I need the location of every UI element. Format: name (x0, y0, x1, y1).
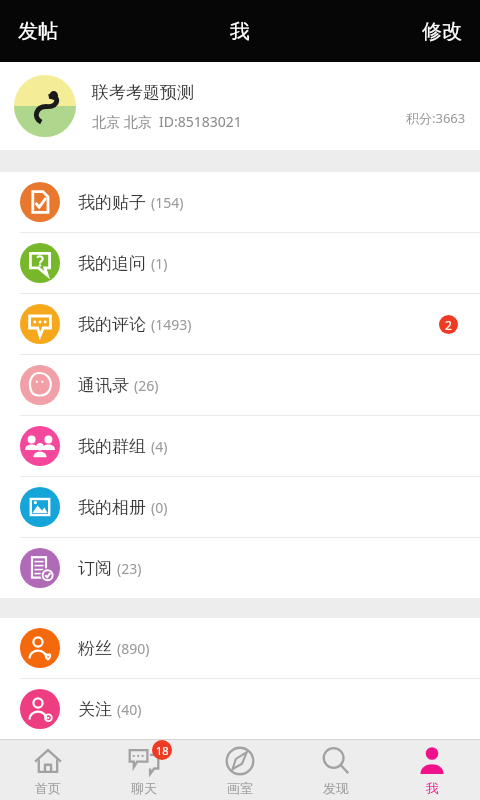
button[interactable]: 粉丝 (0, 618, 480, 678)
staticText: 粉丝 (78, 638, 112, 659)
button[interactable]: 通讯录 (0, 355, 480, 415)
staticText: 我的追问 (78, 253, 146, 274)
staticText: (0) (151, 498, 168, 517)
staticText: 聊天 (131, 780, 157, 796)
button[interactable]: 修改 (404, 0, 480, 62)
staticText: 积分:3663 (406, 109, 466, 127)
staticText: 我的群组 (78, 436, 146, 457)
staticText: 我的评论 (78, 314, 146, 335)
staticText: (4) (151, 437, 168, 456)
staticText: 2 (445, 317, 452, 333)
button[interactable]: 首页 (0, 740, 96, 800)
staticText: 我的相册 (78, 497, 146, 518)
other: 聊天 (127, 744, 161, 778)
staticText: (890) (117, 639, 150, 658)
staticText: 我 (230, 19, 250, 44)
button[interactable]: 我的追问 (0, 233, 480, 293)
staticText: 北京 北京 ID:85183021 (92, 112, 242, 131)
button[interactable]: 关注 (0, 679, 480, 739)
button[interactable]: 我 (384, 740, 480, 800)
other: 画室 (223, 744, 257, 778)
staticText: 联考考题预测 (92, 82, 194, 103)
staticText: 画室 (227, 780, 253, 796)
staticText: (23) (117, 559, 142, 578)
staticText: (26) (134, 376, 159, 395)
staticText: 修改 (422, 19, 462, 44)
staticText: (40) (117, 700, 142, 719)
button[interactable]: 我的评论 (0, 294, 480, 354)
staticText: 通讯录 (78, 375, 129, 396)
staticText: (1493) (151, 315, 192, 334)
staticText: 订阅 (78, 558, 112, 579)
button[interactable]: 发现 (288, 740, 384, 800)
button[interactable]: 聊天 (96, 740, 192, 800)
button[interactable]: 我的贴子 (0, 172, 480, 232)
button[interactable]: 画室 (192, 740, 288, 800)
staticText: 关注 (78, 699, 112, 720)
staticText: 我 (426, 780, 439, 796)
other: 我 (415, 744, 449, 778)
button[interactable]: 我的相册 (0, 477, 480, 537)
staticText: (1) (151, 254, 168, 273)
staticText: 发帖 (18, 19, 58, 44)
button[interactable]: 我的群组 (0, 416, 480, 476)
staticText: 发现 (323, 780, 349, 796)
staticText: (154) (151, 193, 184, 212)
staticText: 首页 (35, 780, 61, 796)
staticText: 我的贴子 (78, 192, 146, 213)
button[interactable]: 发帖 (0, 0, 76, 62)
button[interactable]: 订阅 (0, 538, 480, 598)
other: 首页 (31, 744, 65, 778)
other: 发现 (319, 744, 353, 778)
button[interactable]: 联考考题预测 (0, 62, 480, 150)
staticText: 18 (156, 743, 169, 758)
